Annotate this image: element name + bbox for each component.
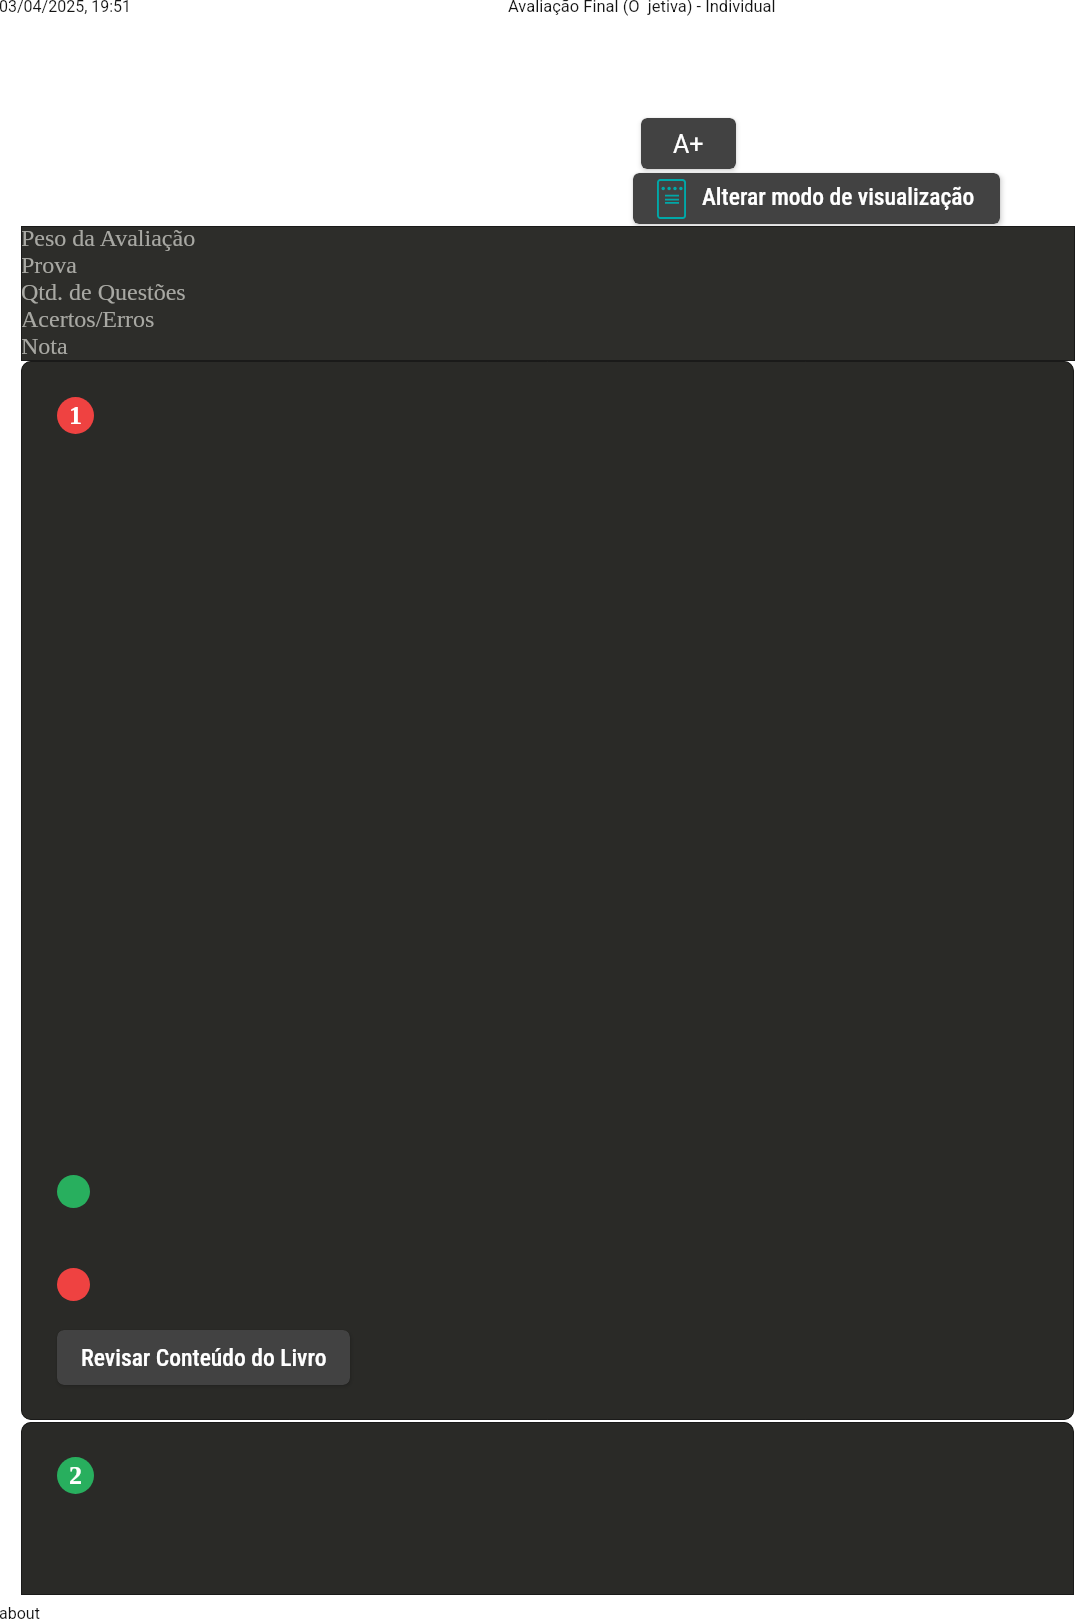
button[interactable]: 1 (57, 397, 94, 434)
staticText: about (0, 1604, 40, 1620)
button[interactable]: Revisar Conteúdo do Livro (57, 1330, 350, 1385)
staticText: Acertos/Erros (21, 306, 155, 333)
button[interactable]: 2 (57, 1457, 94, 1494)
staticText: 2 (69, 1461, 82, 1490)
staticText: A+ (673, 130, 704, 159)
staticText: 03/04/2025, 19:51 (0, 0, 132, 16)
staticText: Peso da Avaliação (21, 225, 196, 252)
other: Resposta incorreta (57, 1268, 90, 1301)
button[interactable]: A+ (641, 118, 736, 169)
staticText: 1 (69, 401, 82, 430)
button[interactable]: 2 (21, 1422, 1074, 1595)
button[interactable]: 1 (21, 361, 1074, 1420)
staticText: Nota (21, 333, 68, 360)
other: Alterar modo de visualização (657, 179, 686, 219)
button[interactable]: Alterar modo de visualização (633, 173, 1000, 224)
other: Resposta correta (57, 1175, 90, 1208)
staticText: Alterar modo de visualização (702, 183, 975, 211)
staticText: Qtd. de Questões (21, 279, 186, 306)
staticText: Avaliação Final (O jetiva) - Individual (508, 0, 776, 16)
staticText: Revisar Conteúdo do Livro (81, 1344, 327, 1372)
staticText: Prova (21, 252, 77, 279)
